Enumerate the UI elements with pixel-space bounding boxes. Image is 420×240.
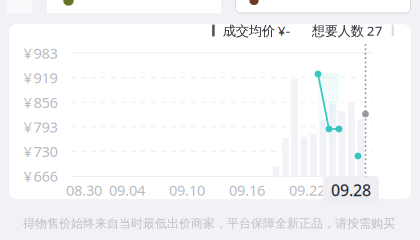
staticText: 09.04 bbox=[109, 180, 145, 200]
staticText: 08.30 bbox=[66, 180, 102, 200]
staticText: 09.22 bbox=[289, 180, 325, 200]
staticText: ¥ 793 bbox=[23, 117, 57, 137]
staticText: ¥ 856 bbox=[23, 92, 57, 112]
staticText: ¥ 730 bbox=[23, 142, 57, 161]
staticText: 得物售价始终来自当时最低出价商家，平台保障全新正品，请按需购买 bbox=[23, 216, 395, 231]
staticText: 09.28 bbox=[331, 179, 371, 201]
staticText: ¥ 983 bbox=[23, 43, 57, 63]
staticText: ¥ 919 bbox=[23, 68, 57, 87]
staticText: ¥ 666 bbox=[23, 166, 57, 186]
staticText: 成交均价 ¥- bbox=[223, 22, 290, 39]
staticText: 想要人数 27 bbox=[312, 22, 383, 39]
staticText: 09.10 bbox=[169, 180, 205, 200]
button[interactable]: 09.28 bbox=[323, 176, 379, 204]
staticText: 09.16 bbox=[229, 180, 265, 200]
